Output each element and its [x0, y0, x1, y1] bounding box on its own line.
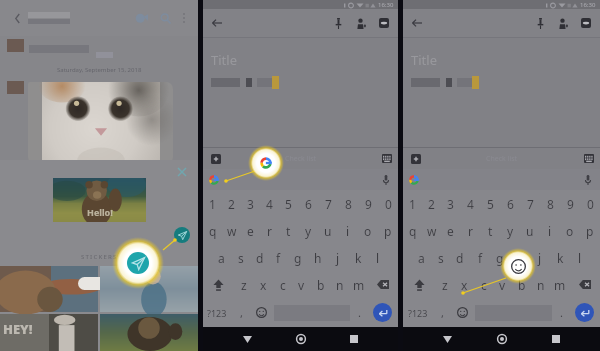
button[interactable]: Google search: [408, 174, 420, 186]
button[interactable]: More options: [178, 12, 190, 24]
button[interactable]: Hide keyboard: [380, 152, 393, 165]
button[interactable]: a: [412, 244, 431, 271]
button[interactable]: 6: [298, 190, 318, 217]
button[interactable]: 4: [460, 190, 480, 217]
button[interactable]: 3: [441, 190, 460, 217]
button[interactable]: d: [450, 244, 470, 271]
button[interactable]: Video call: [133, 9, 151, 27]
button[interactable]: z: [435, 271, 455, 298]
button[interactable]: s: [431, 244, 450, 271]
button[interactable]: 5: [480, 190, 500, 217]
button[interactable]: m: [349, 271, 368, 298]
button[interactable]: Home: [492, 329, 512, 349]
button[interactable]: Back: [209, 15, 225, 31]
button[interactable]: w: [422, 217, 441, 244]
button[interactable]: f: [269, 244, 288, 271]
button[interactable]: Search: [156, 9, 174, 27]
button[interactable]: h: [308, 244, 328, 271]
button[interactable]: 6: [500, 190, 520, 217]
button[interactable]: 0: [378, 190, 398, 217]
button[interactable]: Archive: [376, 15, 392, 31]
button[interactable]: h: [510, 244, 530, 271]
button[interactable]: Home: [291, 329, 311, 349]
button[interactable]: Add collaborator: [353, 15, 369, 31]
button[interactable]: s: [231, 244, 250, 271]
button[interactable]: n: [531, 271, 550, 298]
button[interactable]: 2: [422, 190, 441, 217]
button[interactable]: j: [328, 244, 348, 271]
button[interactable]: x: [254, 271, 273, 298]
button[interactable]: u: [520, 217, 540, 244]
button[interactable]: Shift: [203, 271, 234, 298]
button[interactable]: Shift: [403, 271, 435, 298]
button[interactable]: Archive: [578, 15, 594, 31]
button[interactable]: 7: [520, 190, 540, 217]
button[interactable]: ?123: [403, 298, 432, 327]
button[interactable]: Recent apps: [344, 329, 364, 349]
button[interactable]: d: [250, 244, 269, 271]
button[interactable]: Period: [555, 298, 568, 327]
button[interactable]: b: [311, 271, 330, 298]
button[interactable]: e: [241, 217, 260, 244]
button[interactable]: f: [470, 244, 490, 271]
button[interactable]: Enter: [575, 303, 594, 322]
button[interactable]: k: [348, 244, 368, 271]
button[interactable]: k: [550, 244, 570, 271]
button[interactable]: Google search: [208, 174, 220, 186]
button[interactable]: Add attachment: [409, 152, 422, 165]
button[interactable]: Emoji: [251, 298, 271, 327]
button[interactable]: Back: [437, 329, 457, 349]
button[interactable]: Back: [409, 15, 425, 31]
button[interactable]: x: [455, 271, 474, 298]
button[interactable]: Comma: [231, 298, 251, 327]
button[interactable]: i: [540, 217, 560, 244]
button[interactable]: Add collaborator: [555, 15, 571, 31]
button[interactable]: r: [460, 217, 480, 244]
button[interactable]: Pin note: [330, 15, 346, 31]
button[interactable]: c: [474, 271, 493, 298]
button[interactable]: g: [288, 244, 308, 271]
button[interactable]: Send sticker: [174, 227, 190, 243]
button[interactable]: v: [292, 271, 311, 298]
button[interactable]: q: [403, 217, 422, 244]
button[interactable]: Backspace: [569, 271, 600, 298]
button[interactable]: Pin note: [532, 15, 548, 31]
button[interactable]: Backspace: [368, 271, 398, 298]
button[interactable]: g: [490, 244, 510, 271]
button[interactable]: a: [212, 244, 231, 271]
button[interactable]: Add attachment: [209, 152, 222, 165]
button[interactable]: 1: [403, 190, 422, 217]
button[interactable]: Comma: [432, 298, 452, 327]
button[interactable]: n: [330, 271, 349, 298]
button[interactable]: Hide keyboard: [582, 152, 595, 165]
button[interactable]: ?123: [203, 298, 231, 327]
button[interactable]: Voice input: [582, 174, 594, 186]
button[interactable]: 9: [560, 190, 580, 217]
button[interactable]: 0: [580, 190, 600, 217]
button[interactable]: Enter: [373, 303, 392, 322]
button[interactable]: p: [378, 217, 398, 244]
button[interactable]: 4: [260, 190, 279, 217]
button[interactable]: j: [530, 244, 550, 271]
button[interactable]: r: [260, 217, 279, 244]
button[interactable]: Close: [175, 165, 189, 179]
button[interactable]: t: [279, 217, 298, 244]
button[interactable]: Recent apps: [546, 329, 566, 349]
button[interactable]: y: [298, 217, 318, 244]
button[interactable]: Period: [353, 298, 366, 327]
button[interactable]: l: [368, 244, 388, 271]
button[interactable]: 7: [318, 190, 338, 217]
button[interactable]: 2: [222, 190, 241, 217]
button[interactable]: w: [222, 217, 241, 244]
button[interactable]: o: [560, 217, 580, 244]
button[interactable]: z: [234, 271, 254, 298]
button[interactable]: b: [512, 271, 531, 298]
button[interactable]: v: [493, 271, 512, 298]
button[interactable]: q: [203, 217, 222, 244]
button[interactable]: t: [480, 217, 500, 244]
button[interactable]: 1: [203, 190, 222, 217]
button[interactable]: 9: [358, 190, 378, 217]
button[interactable]: p: [580, 217, 600, 244]
